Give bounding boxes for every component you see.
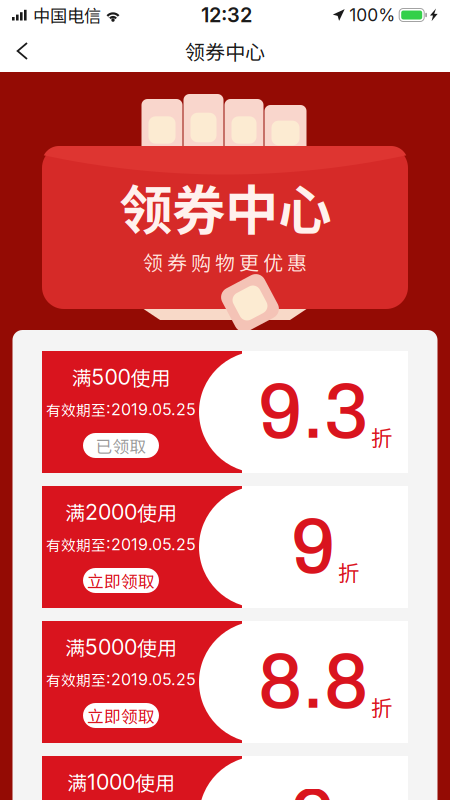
staticText: :2019.05.25 (106, 400, 196, 419)
button[interactable]: 满 (42, 621, 408, 743)
staticText: 使用 (135, 767, 175, 796)
staticText: 满 (65, 497, 85, 526)
staticText: 使用 (137, 632, 177, 661)
staticText: 9 (291, 775, 335, 800)
staticText: 9.3 (258, 370, 368, 454)
staticText: 使用 (130, 362, 170, 391)
staticText: 1000 (87, 769, 135, 795)
button[interactable]: 满 (42, 486, 408, 608)
staticText: 折 (338, 556, 359, 587)
button[interactable]: Back (0, 31, 45, 71)
staticText: 领券中心 (119, 168, 331, 245)
staticText: 有效期至 (46, 534, 106, 555)
staticText: 领券中心 (185, 36, 265, 65)
staticText: 中国电信 (33, 2, 101, 28)
staticText: 100% (349, 4, 395, 25)
staticText: 已领取 (95, 433, 146, 457)
staticText: 折 (371, 691, 392, 722)
staticText: :2019.05.25 (106, 535, 196, 554)
staticText: 领 券 购 物 更 优 惠 (143, 247, 307, 276)
staticText: 折 (371, 421, 392, 452)
staticText: 有效期至 (46, 399, 106, 420)
staticText: 满 (71, 362, 91, 391)
staticText: 5000 (85, 634, 137, 660)
staticText: 9 (291, 505, 335, 589)
staticText: 有效期至 (46, 669, 106, 690)
staticText: 使用 (137, 497, 177, 526)
button[interactable]: 满 (42, 351, 408, 473)
staticText: 12:32 (201, 3, 252, 27)
staticText: :2019.05.25 (106, 670, 196, 689)
staticText: 500 (91, 364, 130, 390)
button[interactable]: 满 (42, 756, 408, 800)
staticText: 2000 (85, 499, 137, 525)
staticText: 满 (67, 767, 87, 796)
staticText: 立即领取 (87, 703, 155, 727)
staticText: 立即领取 (87, 568, 155, 592)
staticText: 8.8 (258, 640, 368, 724)
staticText: 满 (65, 632, 85, 661)
